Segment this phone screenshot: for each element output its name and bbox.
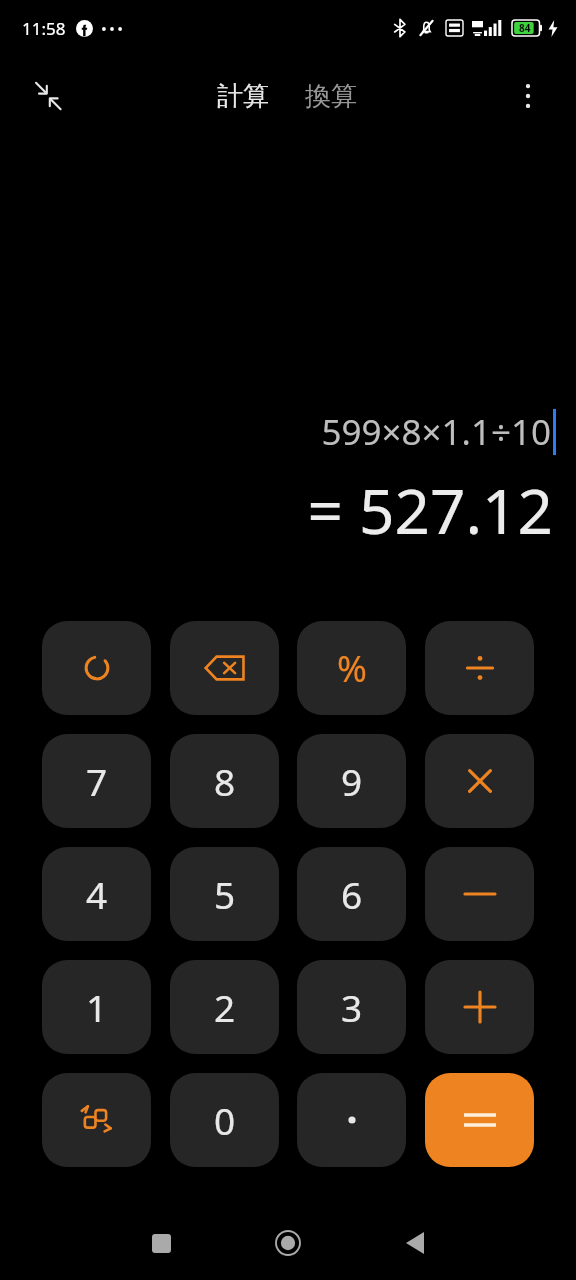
button[interactable] (42, 621, 151, 715)
button[interactable]: 0 (170, 1073, 279, 1167)
button[interactable]: 計算 (211, 76, 275, 117)
staticText: 5 (214, 869, 236, 919)
button[interactable] (425, 847, 534, 941)
button[interactable] (425, 960, 534, 1054)
button[interactable] (297, 1073, 406, 1167)
button[interactable]: 4 (42, 847, 151, 941)
staticText: 換算 (305, 80, 357, 113)
staticText: 11:58 (22, 17, 66, 40)
button[interactable]: 9 (297, 734, 406, 828)
button[interactable]: More options (504, 72, 552, 120)
staticText: 6 (341, 869, 363, 919)
button[interactable] (425, 621, 534, 715)
button[interactable]: 5 (170, 847, 279, 941)
staticText: 599×8×1.1÷10 (321, 408, 551, 456)
staticText: 1 (86, 982, 108, 1032)
button[interactable]: Back (399, 1227, 431, 1259)
button[interactable]: Home (272, 1227, 304, 1259)
staticText: = 527.12 (307, 468, 553, 552)
staticText: 9 (341, 756, 363, 806)
button[interactable]: 換算 (299, 76, 363, 117)
staticText: 84 (519, 21, 531, 35)
staticText: 2 (214, 982, 236, 1032)
button[interactable]: Recents (145, 1227, 177, 1259)
button[interactable]: 6 (297, 847, 406, 941)
button[interactable]: 8 (170, 734, 279, 828)
staticText: 計算 (217, 80, 269, 113)
staticText: 0 (214, 1095, 236, 1145)
button[interactable]: Scientific functions (42, 1073, 151, 1167)
button[interactable]: % (297, 621, 406, 715)
staticText: 4 (86, 869, 108, 919)
button[interactable]: Backspace (170, 621, 279, 715)
button[interactable]: Equals (425, 1073, 534, 1167)
staticText: % (337, 644, 367, 693)
staticText: 3 (341, 982, 363, 1032)
staticText: 8 (214, 756, 236, 806)
staticText: 7 (86, 756, 108, 806)
button[interactable]: 1 (42, 960, 151, 1054)
button[interactable]: 3 (297, 960, 406, 1054)
button[interactable]: 2 (170, 960, 279, 1054)
button[interactable] (425, 734, 534, 828)
button[interactable]: Collapse (24, 72, 72, 120)
button[interactable]: 7 (42, 734, 151, 828)
